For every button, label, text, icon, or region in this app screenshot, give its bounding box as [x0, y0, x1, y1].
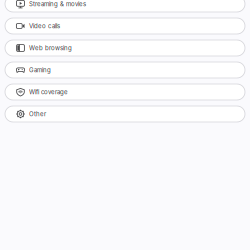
staticText: Other [29, 110, 46, 118]
staticText: Web browsing [29, 44, 72, 52]
button[interactable]: Other [5, 106, 245, 122]
button[interactable]: Gaming [5, 62, 245, 78]
staticText: Gaming [29, 66, 51, 74]
staticText: Streaming & movies [29, 0, 86, 8]
button[interactable]: Wifi coverage [5, 84, 245, 100]
button[interactable]: Video calls [5, 18, 245, 34]
staticText: Wifi coverage [29, 88, 68, 96]
staticText: Video calls [29, 22, 60, 30]
button[interactable]: Web browsing [5, 40, 245, 56]
button[interactable]: Streaming & movies [5, 0, 245, 12]
